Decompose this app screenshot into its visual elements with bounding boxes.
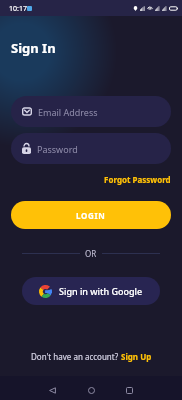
button[interactable]: LOGIN: [11, 201, 171, 229]
staticText: Email Address: [38, 106, 98, 118]
button[interactable]: Recent apps: [121, 382, 137, 398]
button[interactable]: Sign Up: [121, 351, 152, 362]
staticText: 10:17: [9, 4, 27, 14]
button[interactable]: Email Address: [11, 96, 171, 127]
button[interactable]: Password: [11, 133, 171, 164]
button[interactable]: Forgot Password: [104, 174, 171, 185]
staticText: Sign in with Google: [59, 285, 143, 297]
staticText: Sign In: [11, 39, 56, 57]
button[interactable]: Sign in with Google: [22, 277, 160, 305]
staticText: Password: [37, 143, 78, 155]
button[interactable]: Back: [44, 382, 60, 398]
staticText: LOGIN: [76, 210, 106, 221]
staticText: OR: [85, 248, 97, 259]
staticText: Don't have an account?: [31, 351, 121, 362]
button[interactable]: Home: [83, 382, 99, 398]
